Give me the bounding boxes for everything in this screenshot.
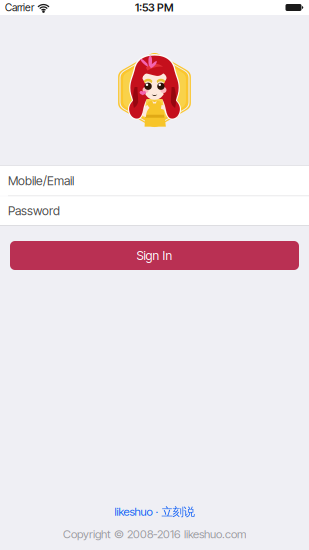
staticText: Carrier [5,1,34,14]
staticText: Password [8,203,60,218]
button[interactable]: Mobile/Email [0,166,309,196]
staticText: 1:53 PM [135,1,174,14]
staticText: Copyright © 2008-2016 likeshuo.com [63,527,246,541]
staticText: Mobile/Email [8,173,74,188]
button[interactable]: Password [0,196,309,225]
staticText: Sign In [136,248,172,263]
button[interactable]: likeshuo · 立刻说 [0,496,309,519]
button[interactable]: Sign In [10,241,299,270]
staticText: likeshuo · 立刻说 [114,505,194,519]
